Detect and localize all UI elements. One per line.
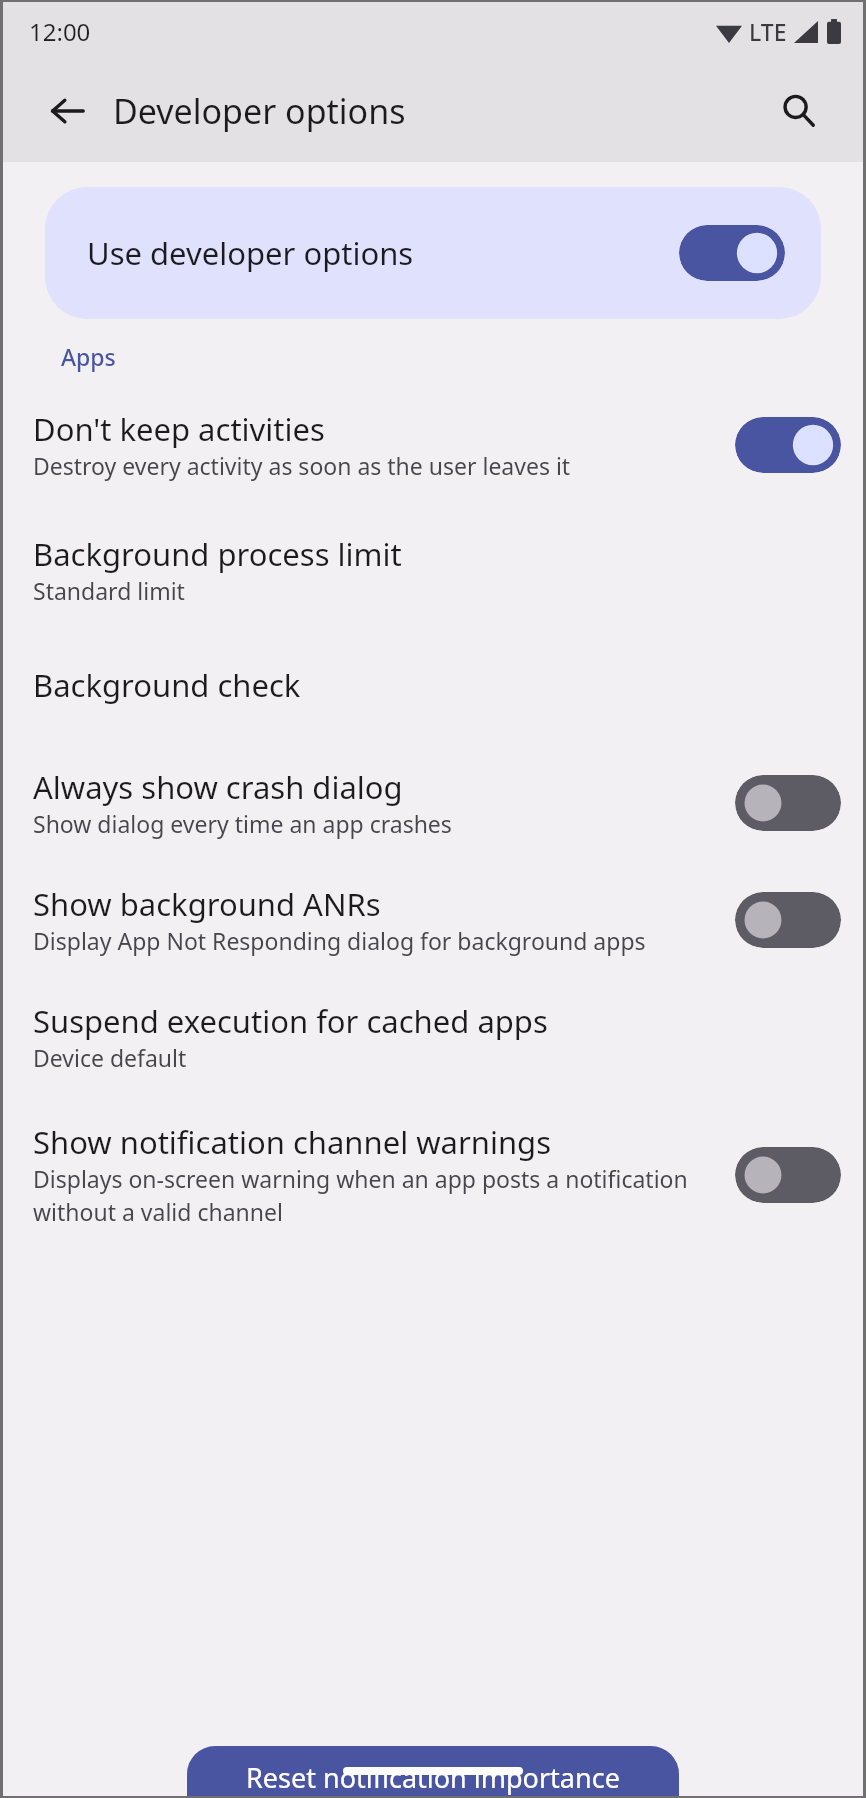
staticText: Background process limit (33, 533, 402, 575)
button[interactable]: Show notification channel warnings (3, 1121, 863, 1228)
staticText: Developer options (113, 88, 406, 134)
staticText: Device default (33, 1042, 187, 1073)
button[interactable]: Back (39, 83, 95, 139)
button[interactable]: Always show crash dialog (3, 766, 863, 839)
button[interactable]: Search (771, 83, 827, 139)
button[interactable]: Background check (3, 664, 863, 706)
button[interactable]: Suspend execution for cached apps (3, 1000, 863, 1073)
button[interactable]: Off (735, 775, 841, 831)
staticText: Show notification channel warnings (33, 1121, 552, 1163)
button[interactable]: Show background ANRs (3, 883, 863, 956)
button[interactable]: On (735, 417, 841, 473)
staticText: Use developer options (87, 232, 679, 274)
button[interactable]: Reset notification importance (187, 1746, 679, 1796)
staticText: Show background ANRs (33, 883, 381, 925)
button[interactable]: Off (735, 892, 841, 948)
staticText: 12:00 (29, 15, 91, 48)
staticText: Display App Not Responding dialog for ba… (33, 925, 646, 956)
staticText: Destroy every activity as soon as the us… (33, 450, 571, 481)
staticText: Show dialog every time an app crashes (33, 808, 452, 839)
button[interactable]: On (679, 225, 785, 281)
staticText: Apps (61, 341, 116, 372)
staticText: Suspend execution for cached apps (33, 1000, 548, 1042)
staticText: Displays on-screen warning when an app p… (33, 1163, 721, 1228)
button[interactable]: Use developer options (45, 187, 821, 319)
staticText: Background check (33, 664, 301, 706)
staticText: Always show crash dialog (33, 766, 403, 808)
button[interactable]: Don't keep activities (3, 408, 863, 481)
button[interactable]: Off (735, 1147, 841, 1203)
staticText: Don't keep activities (33, 408, 325, 450)
button[interactable]: Background process limit (3, 533, 863, 606)
staticText: LTE (749, 16, 787, 47)
staticText: Standard limit (33, 575, 185, 606)
staticText: Reset notification importance (246, 1759, 620, 1796)
